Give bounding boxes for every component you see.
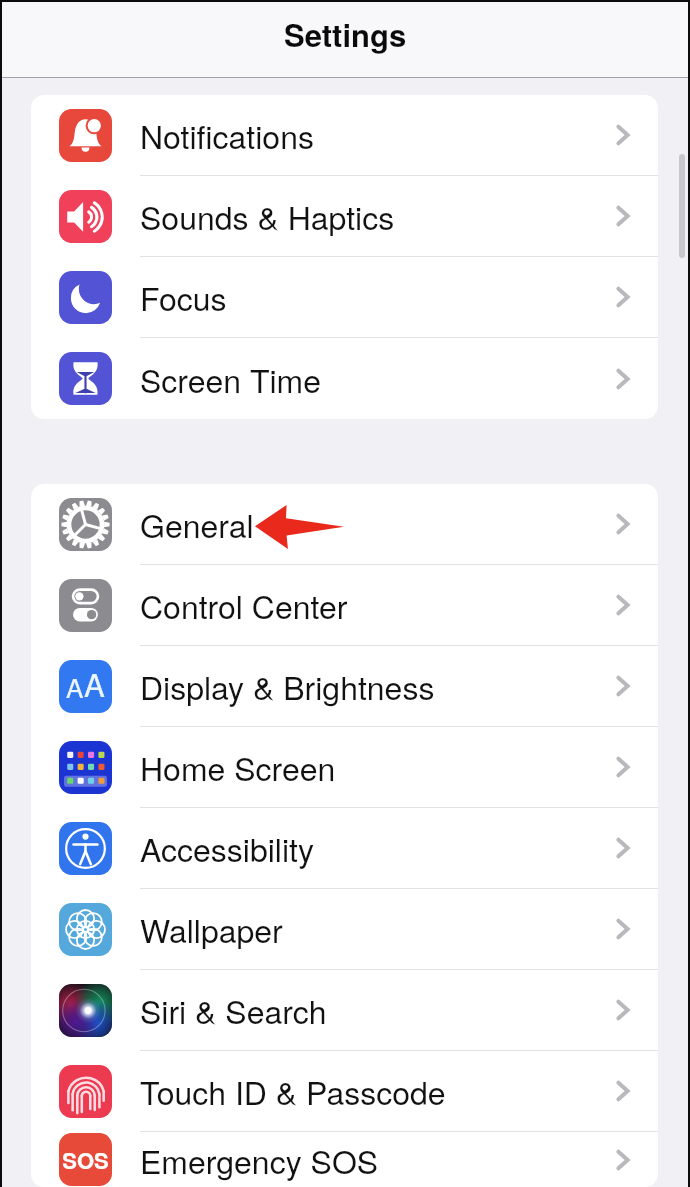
button[interactable]: Notifications — [31, 95, 658, 176]
staticText: Notifications — [140, 112, 314, 158]
button[interactable]: Focus — [31, 257, 658, 338]
staticText: Focus — [140, 274, 227, 320]
staticText: SOS — [62, 1144, 109, 1176]
button[interactable]: Sounds & Haptics — [31, 176, 658, 257]
button[interactable]: SOS — [31, 1132, 658, 1187]
staticText: A — [84, 661, 105, 705]
staticText: Siri & Search — [140, 987, 327, 1033]
staticText: Screen Time — [140, 356, 322, 402]
button[interactable]: Home Screen — [31, 727, 658, 808]
staticText: Accessibility — [140, 825, 314, 871]
staticText: Emergency SOS — [140, 1137, 379, 1183]
button[interactable]: Touch ID & Passcode — [31, 1051, 658, 1132]
staticText: Control Center — [140, 582, 348, 628]
staticText: Display & Brightness — [140, 663, 435, 709]
staticText: General — [140, 501, 254, 547]
staticText: A — [66, 668, 84, 705]
staticText: Sounds & Haptics — [140, 193, 395, 239]
button[interactable]: General — [31, 484, 658, 565]
staticText: Settings — [284, 12, 407, 56]
button[interactable]: Accessibility — [31, 808, 658, 889]
button[interactable]: Control Center — [31, 565, 658, 646]
other: Annotation arrow — [255, 505, 344, 549]
button[interactable]: Siri & Search — [31, 970, 658, 1051]
staticText: Home Screen — [140, 744, 336, 790]
button[interactable]: A — [31, 646, 658, 727]
staticText: Wallpaper — [140, 906, 283, 952]
button[interactable]: Screen Time — [31, 338, 658, 419]
staticText: Touch ID & Passcode — [140, 1068, 446, 1114]
button[interactable]: Wallpaper — [31, 889, 658, 970]
